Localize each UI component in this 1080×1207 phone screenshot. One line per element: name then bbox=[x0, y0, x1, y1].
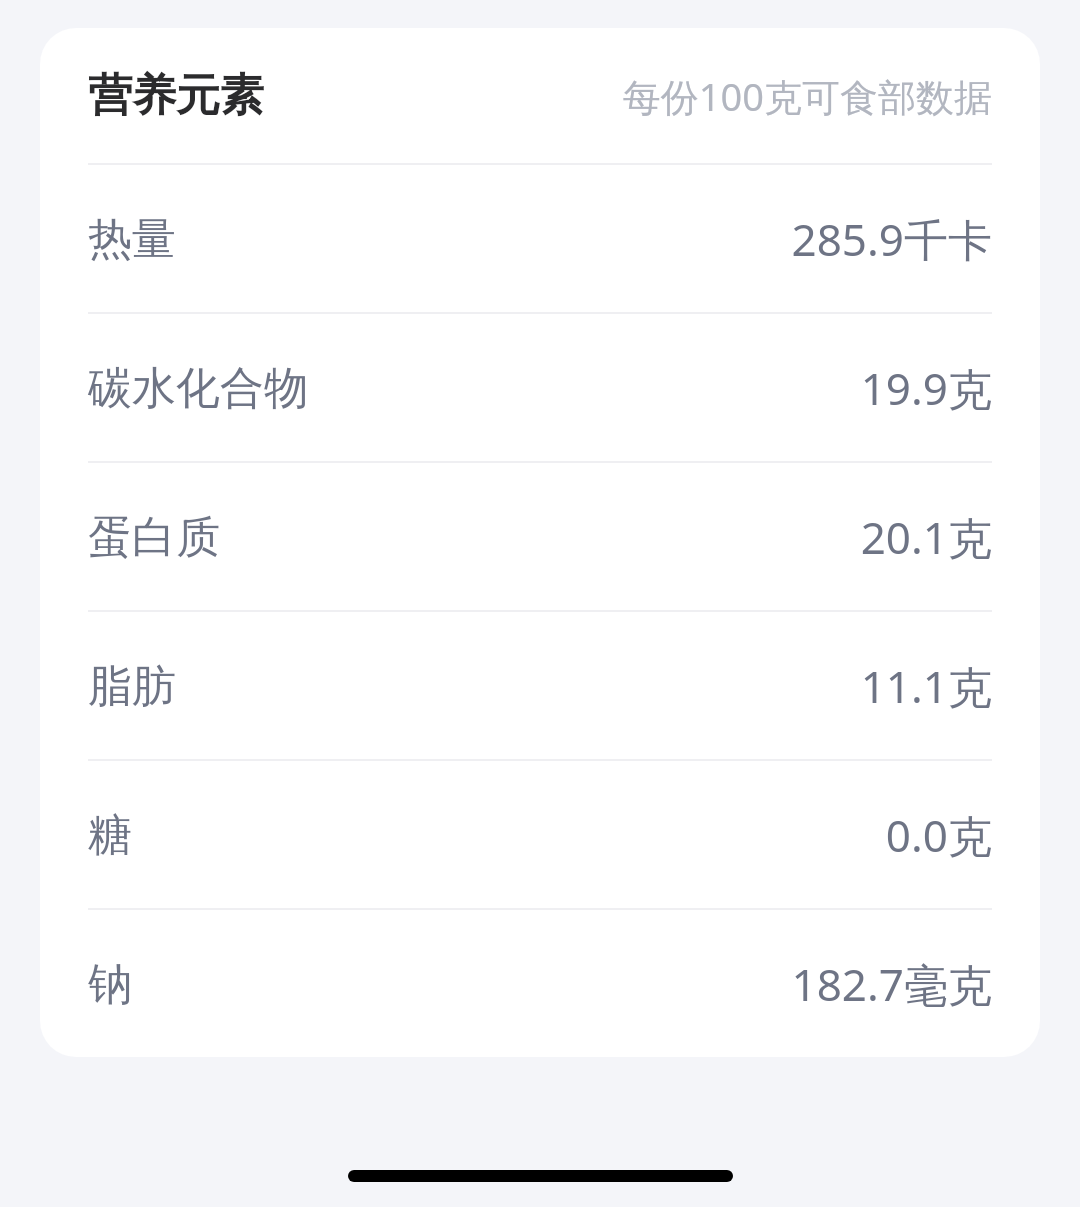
staticText: 热量 bbox=[88, 212, 176, 267]
staticText: 19.9克 bbox=[860, 358, 992, 418]
staticText: 营养元素 bbox=[88, 68, 264, 123]
other: Home bbox=[348, 1170, 733, 1182]
staticText: 碳水化合物 bbox=[88, 361, 308, 416]
button[interactable]: 蛋白质 bbox=[40, 463, 1040, 610]
staticText: 每份100克可食部数据 bbox=[272, 70, 992, 122]
staticText: 182.7毫克 bbox=[791, 954, 992, 1014]
button[interactable]: 碳水化合物 bbox=[40, 314, 1040, 461]
staticText: 0.0克 bbox=[885, 805, 992, 865]
staticText: 蛋白质 bbox=[88, 510, 220, 565]
button[interactable]: 糖 bbox=[40, 761, 1040, 908]
button[interactable]: 钠 bbox=[40, 910, 1040, 1057]
staticText: 糖 bbox=[88, 808, 132, 863]
button[interactable]: 脂肪 bbox=[40, 612, 1040, 759]
staticText: 285.9千卡 bbox=[791, 209, 992, 269]
button[interactable]: 热量 bbox=[40, 165, 1040, 312]
staticText: 20.1克 bbox=[860, 507, 992, 567]
staticText: 11.1克 bbox=[860, 656, 992, 716]
staticText: 脂肪 bbox=[88, 659, 176, 714]
staticText: 钠 bbox=[88, 957, 132, 1012]
button[interactable]: 营养元素 bbox=[40, 28, 1040, 163]
